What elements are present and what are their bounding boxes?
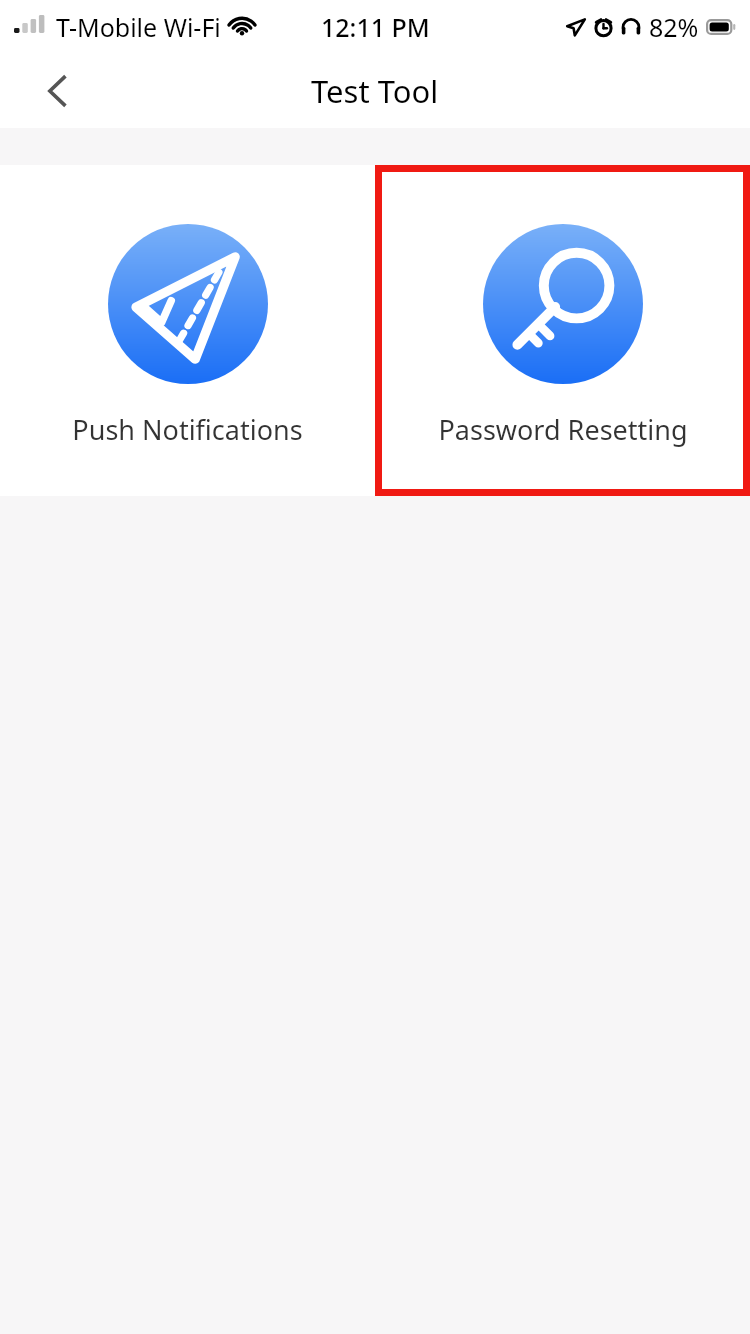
button[interactable]: Password Resetting [375, 165, 750, 496]
staticText: Test Tool [311, 70, 439, 112]
staticText: 12:11 PM [321, 10, 430, 44]
staticText: Password Resetting [438, 411, 688, 448]
staticText: Push Notifications [72, 411, 303, 448]
staticText: T-Mobile Wi-Fi [56, 10, 221, 44]
button[interactable]: Push Notifications [0, 165, 375, 496]
button[interactable]: Back [30, 63, 86, 119]
staticText: 82% [649, 10, 699, 44]
